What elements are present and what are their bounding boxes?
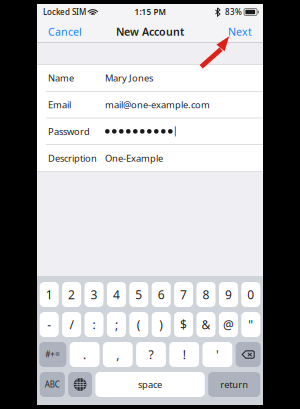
staticText: Password — [48, 125, 90, 138]
button[interactable]: ; — [107, 312, 126, 337]
staticText: @ — [223, 316, 234, 332]
staticText: Description — [48, 152, 97, 164]
button[interactable]: 0 — [241, 282, 260, 307]
button[interactable]: 6 — [152, 282, 171, 307]
staticText: ! — [183, 346, 186, 362]
staticText: return — [220, 378, 248, 391]
button[interactable]: ( — [129, 312, 148, 337]
staticText: 9 — [225, 286, 232, 302]
staticText: mail@one-example.com — [105, 98, 210, 111]
button[interactable]: Next — [219, 20, 263, 43]
button[interactable]: ) — [152, 312, 171, 337]
button[interactable]: return — [208, 372, 260, 397]
button[interactable]: / — [62, 312, 81, 337]
button[interactable]: ! — [169, 342, 199, 367]
button[interactable]: , — [103, 342, 133, 367]
staticText: #+= — [45, 349, 60, 360]
button[interactable]: 1 — [40, 282, 59, 307]
button[interactable]: Name — [37, 65, 263, 91]
staticText: 3 — [90, 286, 97, 302]
button[interactable]: ' — [202, 342, 232, 367]
staticText: , — [116, 346, 119, 362]
staticText: 6 — [158, 286, 165, 302]
button[interactable]: . — [70, 342, 99, 367]
staticText: 7 — [180, 286, 187, 302]
staticText: ? — [148, 346, 153, 362]
button[interactable]: @ — [219, 312, 238, 337]
staticText: Mary Jones — [105, 72, 153, 84]
button[interactable]: space — [95, 372, 205, 397]
button[interactable]: Description — [37, 145, 263, 171]
button[interactable]: 4 — [107, 282, 126, 307]
staticText: ABC — [45, 379, 60, 390]
button[interactable]: 9 — [219, 282, 238, 307]
button[interactable]: ? — [136, 342, 166, 367]
staticText: Locked SIM — [43, 7, 86, 17]
button[interactable]: Cancel — [37, 20, 91, 43]
button[interactable]: 5 — [129, 282, 148, 307]
staticText: 4 — [113, 286, 120, 302]
button[interactable]: & — [196, 312, 215, 337]
button[interactable]: 7 — [174, 282, 193, 307]
button[interactable]: $ — [174, 312, 193, 337]
staticText: 5 — [135, 286, 142, 302]
staticText: Cancel — [48, 24, 82, 39]
button[interactable]: " — [241, 312, 260, 337]
staticText: & — [201, 316, 210, 332]
button[interactable]: Delete — [236, 342, 261, 367]
staticText: : — [92, 316, 95, 332]
staticText: ; — [115, 316, 118, 332]
staticText: - — [47, 316, 51, 332]
button[interactable]: 8 — [196, 282, 215, 307]
staticText: / — [70, 316, 74, 332]
staticText: Name — [48, 72, 74, 84]
button[interactable]: Next keyboard — [68, 372, 92, 397]
staticText: Email — [48, 98, 71, 111]
button[interactable]: 3 — [84, 282, 103, 307]
staticText: New Account — [116, 24, 184, 39]
staticText: space — [138, 378, 162, 391]
staticText: 0 — [247, 286, 254, 302]
button[interactable]: : — [84, 312, 103, 337]
staticText: 1:15 PM — [134, 7, 165, 17]
button[interactable]: #+= — [39, 342, 66, 367]
staticText: . — [83, 346, 86, 362]
staticText: ' — [216, 346, 219, 362]
button[interactable]: ABC — [40, 372, 65, 397]
staticText: $ — [180, 316, 187, 332]
staticText: Next — [228, 24, 252, 39]
staticText: 8 — [202, 286, 209, 302]
staticText: " — [248, 316, 253, 332]
button[interactable]: - — [40, 312, 59, 337]
staticText: ( — [137, 316, 141, 332]
button[interactable]: Password — [37, 118, 263, 144]
staticText: One-Example — [105, 152, 163, 164]
staticText: 2 — [68, 286, 75, 302]
button[interactable]: 2 — [62, 282, 81, 307]
staticText: ) — [159, 316, 163, 332]
button[interactable]: Email — [37, 92, 263, 118]
staticText: 1 — [46, 286, 53, 302]
staticText: 83% — [225, 7, 242, 17]
